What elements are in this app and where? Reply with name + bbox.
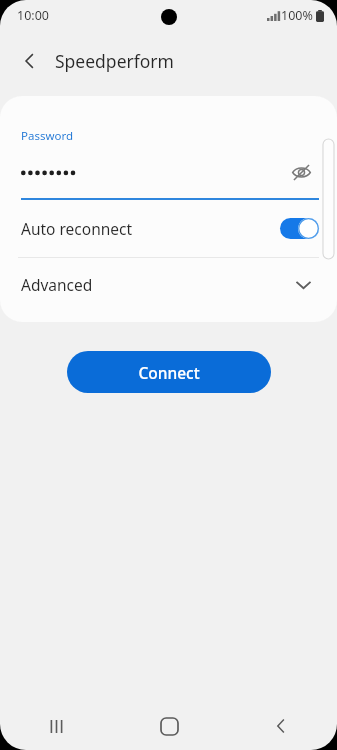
button[interactable]: Advanced <box>0 258 337 310</box>
button[interactable]: Connect <box>67 351 271 393</box>
button[interactable]: Back <box>10 41 50 81</box>
other: Expand advanced <box>287 268 319 300</box>
button[interactable]: Show password <box>283 154 319 190</box>
button[interactable]: Auto reconnect <box>0 200 337 257</box>
staticText: Speedperform <box>55 49 174 73</box>
staticText: Password <box>21 128 74 144</box>
button[interactable]: Recents <box>0 702 113 750</box>
button[interactable]: Home <box>113 702 225 750</box>
button[interactable]: Back <box>225 702 337 750</box>
staticText: Advanced <box>21 274 287 295</box>
staticText: Connect <box>138 362 200 383</box>
staticText: Auto reconnect <box>21 218 280 239</box>
button[interactable]: Password <box>0 96 337 200</box>
staticText: 10:00 <box>17 7 49 24</box>
staticText: 100% <box>281 7 313 24</box>
